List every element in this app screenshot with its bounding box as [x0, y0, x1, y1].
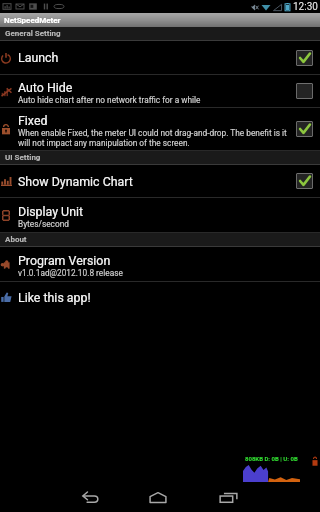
button[interactable]: Toggle [296, 50, 313, 66]
staticText: Show Dynamic Chart [18, 174, 133, 189]
button[interactable]: Like this app! [0, 282, 320, 312]
staticText: Auto Hide [18, 80, 73, 95]
staticText: v1.0.1ad@2012.10.8 release [18, 268, 123, 278]
button[interactable]: Launch [0, 41, 320, 75]
button[interactable]: Display Unit [0, 198, 320, 233]
staticText: 12:30 [293, 1, 318, 13]
button[interactable]: Home [138, 482, 178, 512]
staticText: Program Version [18, 253, 111, 268]
button[interactable]: Toggle [296, 173, 313, 189]
button[interactable]: Show Dynamic Chart [0, 165, 320, 198]
button[interactable]: Toggle [296, 121, 313, 137]
staticText: Like this app! [18, 290, 91, 305]
button[interactable]: Recent apps [208, 482, 248, 512]
button[interactable]: Back [70, 482, 110, 512]
button[interactable]: Toggle [296, 83, 313, 99]
button[interactable]: Program Version [0, 247, 320, 282]
button[interactable]: Auto Hide [0, 75, 320, 108]
staticText: Display Unit [18, 204, 84, 219]
staticText: About [5, 235, 27, 244]
staticText: Auto hide chart after no network traffic… [18, 95, 201, 105]
staticText: General Setting [5, 29, 61, 38]
staticText: Launch [18, 50, 59, 65]
staticText: UI Setting [5, 153, 41, 162]
staticText: 808KB D: 0B | U: 0B [245, 455, 298, 462]
staticText: When enable Fixed, the meter UI could no… [18, 128, 292, 148]
staticText: NetSpeedMeter [4, 16, 61, 25]
staticText: Bytes/second [18, 219, 69, 229]
button[interactable]: Fixed [0, 108, 320, 151]
staticText: Fixed [18, 113, 48, 128]
